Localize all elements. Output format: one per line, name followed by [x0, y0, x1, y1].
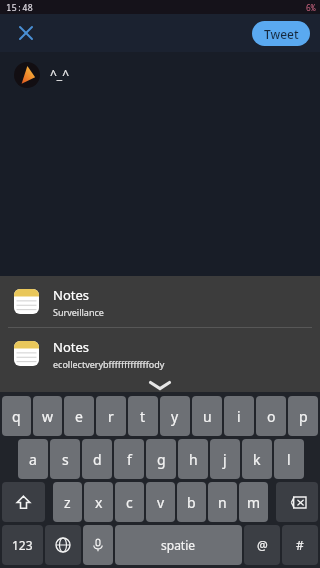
staticText: j	[223, 450, 227, 469]
staticText: #	[296, 537, 304, 553]
staticText: n	[218, 493, 227, 512]
staticText: x	[95, 493, 103, 512]
button[interactable]: k	[242, 439, 272, 479]
staticText: 6%	[306, 2, 316, 13]
button[interactable]: Tweet	[252, 21, 310, 46]
button[interactable]: n	[208, 482, 237, 522]
button[interactable]: x	[84, 482, 113, 522]
button[interactable]: r	[96, 396, 126, 436]
button[interactable]: Close	[10, 17, 42, 49]
button[interactable]: c	[115, 482, 144, 522]
staticText: v	[157, 493, 165, 512]
button[interactable]: p	[288, 396, 318, 436]
button[interactable]: e	[64, 396, 94, 436]
button[interactable]: Notes	[0, 276, 320, 327]
staticText: f	[127, 450, 132, 469]
button[interactable]: o	[256, 396, 286, 436]
button[interactable]: a	[18, 439, 48, 479]
button[interactable]: i	[224, 396, 254, 436]
button[interactable]: s	[50, 439, 80, 479]
staticText: Tweet	[264, 26, 299, 42]
button[interactable]: Notes	[0, 328, 320, 379]
button[interactable]: Shift	[2, 482, 45, 522]
staticText: d	[93, 450, 102, 469]
button[interactable]: q	[2, 396, 31, 436]
button[interactable]: #	[282, 525, 318, 565]
button[interactable]: m	[239, 482, 268, 522]
button[interactable]: Change language	[45, 525, 81, 565]
button[interactable]: d	[82, 439, 112, 479]
button[interactable]: b	[177, 482, 206, 522]
staticText: c	[126, 493, 133, 512]
staticText: y	[171, 407, 179, 426]
staticText: Notes	[53, 338, 89, 356]
button[interactable]: Profile picture	[14, 62, 40, 88]
staticText: u	[203, 407, 212, 426]
staticText: @	[257, 537, 268, 553]
button[interactable]: y	[160, 396, 190, 436]
button[interactable]: z	[53, 482, 82, 522]
staticText: z	[64, 493, 71, 512]
staticText: b	[187, 493, 196, 512]
staticText: q	[12, 407, 21, 426]
button[interactable]: u	[192, 396, 222, 436]
staticText: s	[62, 450, 69, 469]
staticText: o	[267, 407, 276, 426]
staticText: 15:48	[6, 1, 34, 13]
staticText: g	[157, 450, 166, 469]
staticText: 123	[12, 537, 33, 553]
button[interactable]: spatie	[115, 525, 242, 565]
button[interactable]: t	[128, 396, 158, 436]
button[interactable]: h	[178, 439, 208, 479]
staticText: ecollectverybfffffffffffffody	[53, 358, 165, 370]
staticText: spatie	[161, 537, 196, 553]
staticText: t	[140, 407, 146, 426]
staticText: l	[287, 450, 291, 469]
button[interactable]: f	[114, 439, 144, 479]
button[interactable]: w	[33, 396, 62, 436]
staticText: r	[108, 407, 114, 426]
button[interactable]: l	[274, 439, 304, 479]
staticText: w	[42, 407, 54, 426]
button[interactable]: v	[146, 482, 175, 522]
staticText: i	[237, 407, 241, 426]
button[interactable]: 123	[2, 525, 43, 565]
staticText: h	[189, 450, 198, 469]
button[interactable]: Voice input	[83, 525, 113, 565]
staticText: a	[29, 450, 37, 469]
button[interactable]: j	[210, 439, 240, 479]
staticText: Surveillance	[53, 306, 104, 318]
button[interactable]: @	[244, 525, 280, 565]
staticText: Notes	[53, 286, 89, 304]
staticText: m	[247, 493, 261, 512]
staticText: ^_^	[50, 66, 70, 82]
button[interactable]: g	[146, 439, 176, 479]
staticText: k	[253, 450, 261, 469]
staticText: p	[299, 407, 308, 426]
staticText: e	[75, 407, 83, 426]
button[interactable]: Backspace	[276, 482, 318, 522]
